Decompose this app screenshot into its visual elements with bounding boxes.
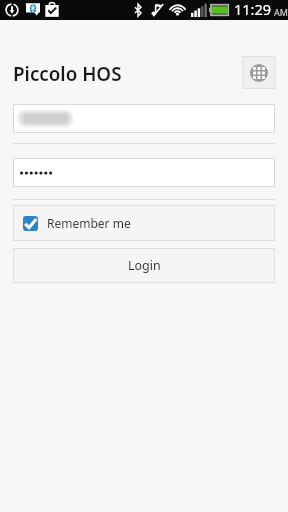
button[interactable] [13, 104, 275, 133]
staticText: 11:29 [234, 0, 272, 19]
staticText: Remember me [47, 215, 131, 231]
button[interactable]: Change language [242, 56, 276, 89]
button[interactable]: Remember me [13, 205, 275, 241]
button[interactable]: Login [13, 248, 275, 283]
staticText: Login [128, 257, 161, 274]
staticText: AM [274, 6, 288, 18]
staticText: Piccolo HOS [13, 61, 122, 87]
button[interactable] [13, 158, 275, 187]
